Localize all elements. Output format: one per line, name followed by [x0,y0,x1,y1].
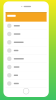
button[interactable] [6,38,47,46]
button[interactable] [6,30,47,38]
button[interactable] [6,79,47,87]
button[interactable] [6,71,47,79]
button[interactable] [6,46,47,54]
button[interactable] [6,12,16,17]
button[interactable] [6,22,47,30]
button[interactable] [6,55,47,63]
button[interactable] [6,63,47,71]
